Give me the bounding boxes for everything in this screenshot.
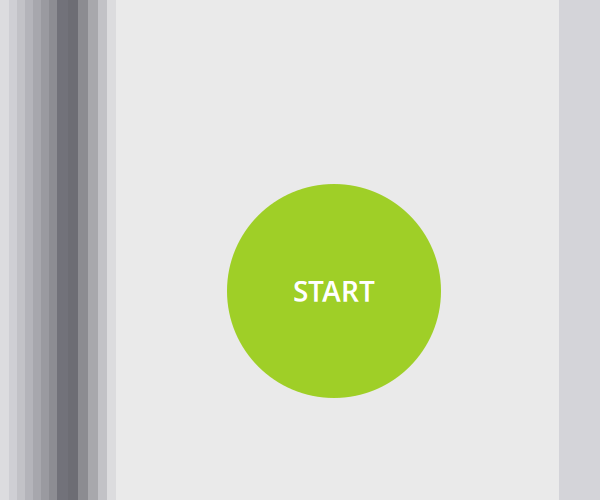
- staticText: START: [293, 272, 375, 310]
- button[interactable]: START: [227, 184, 441, 398]
